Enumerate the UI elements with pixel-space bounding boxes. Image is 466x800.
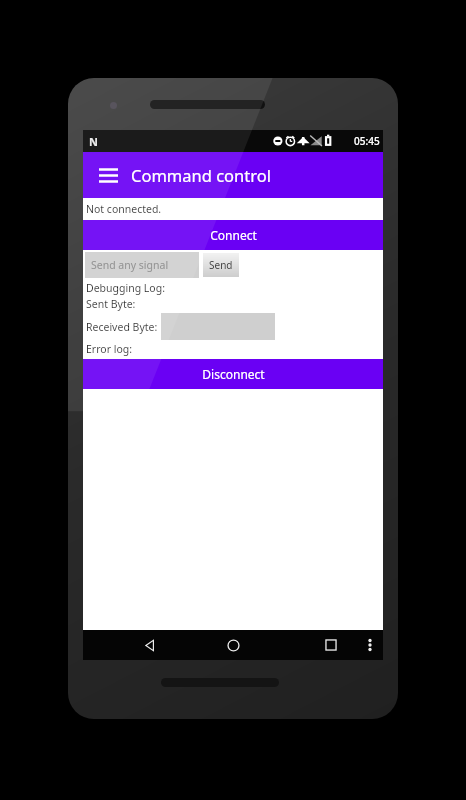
staticText: 05:45 — [354, 134, 380, 148]
staticText: Error log: — [86, 342, 133, 356]
button[interactable]: Send — [203, 253, 239, 277]
staticText: N — [89, 134, 98, 148]
staticText: Send — [209, 258, 233, 272]
staticText: Disconnect — [202, 366, 265, 382]
button[interactable]: Back — [116, 630, 182, 660]
staticText: Command control — [131, 164, 271, 186]
button[interactable]: Home — [200, 630, 266, 660]
staticText: Debugging Log: — [86, 281, 165, 295]
button[interactable]: Disconnect — [83, 359, 383, 389]
button[interactable]: Recent apps — [303, 630, 359, 660]
staticText: Send any signal — [91, 258, 169, 272]
staticText: Sent Byte: — [86, 297, 136, 311]
button[interactable]: More options — [357, 630, 383, 660]
button[interactable]: Connect — [83, 220, 383, 250]
staticText: Received Byte: — [86, 320, 158, 334]
button[interactable]: Open navigation drawer — [91, 158, 125, 192]
staticText: Not connected. — [86, 202, 162, 216]
staticText: Connect — [210, 227, 257, 243]
button[interactable]: Send any signal — [85, 252, 199, 278]
